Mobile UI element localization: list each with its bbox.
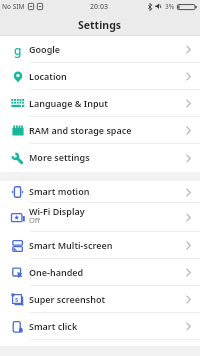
staticText: Off [29, 215, 41, 225]
button[interactable]: More settings [0, 144, 200, 172]
staticText: 3% [165, 2, 175, 11]
staticText: S [15, 296, 19, 304]
staticText: Language & Input [29, 97, 108, 109]
staticText: Smart Multi-screen [29, 239, 113, 251]
button[interactable]: Wi-Fi Display [0, 203, 200, 232]
staticText: 20:03 [90, 2, 108, 12]
staticText: Smart click [29, 320, 78, 332]
staticText: Wi-Fi Display [29, 205, 85, 217]
button[interactable]: Smart Multi-screen [0, 232, 200, 259]
staticText: Smart motion [29, 185, 90, 197]
button[interactable]: Smart motion [0, 181, 200, 203]
staticText: Google [29, 43, 61, 55]
staticText: g [14, 42, 22, 58]
staticText: One-handed [29, 266, 84, 278]
staticText: More settings [29, 151, 90, 163]
button[interactable]: RAM and storage space [0, 117, 200, 144]
staticText: Location [29, 70, 67, 82]
button[interactable]: g [0, 36, 200, 63]
button[interactable]: Smart click [0, 313, 200, 340]
staticText: Settings [78, 18, 122, 32]
staticText: No SIM [2, 2, 25, 11]
staticText: RAM and storage space [29, 124, 132, 136]
button[interactable]: One-handed [0, 259, 200, 286]
button[interactable]: S [0, 286, 200, 313]
button[interactable]: Language & Input [0, 90, 200, 117]
button[interactable]: Location [0, 63, 200, 90]
staticText: Super screenshot [29, 293, 106, 305]
